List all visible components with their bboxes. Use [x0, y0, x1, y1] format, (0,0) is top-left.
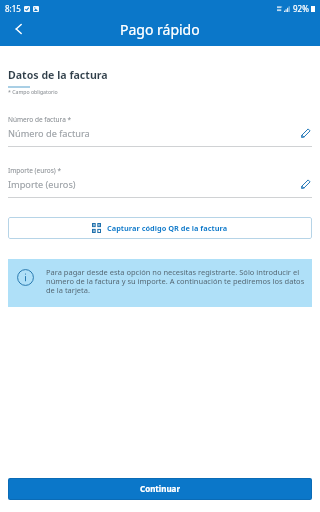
staticText: * Campo obligatorio — [8, 88, 58, 95]
staticText: Importe (euros) — [8, 178, 298, 191]
staticText: 8:15 — [5, 3, 21, 14]
staticText: 92% — [293, 3, 309, 14]
button[interactable]: Edit — [298, 126, 312, 140]
button[interactable]: Capturar código QR de la factura — [8, 217, 312, 239]
staticText: Pago rápido — [120, 20, 200, 39]
button[interactable]: Edit — [298, 177, 312, 191]
button[interactable]: Continuar — [9, 479, 311, 499]
button[interactable]: Back — [8, 18, 30, 40]
staticText: Número de factura — [8, 127, 298, 140]
staticText: Para pagar desde esta opción no necesita… — [46, 267, 307, 295]
staticText: Capturar código QR de la factura — [107, 223, 228, 233]
staticText: Continuar — [140, 483, 180, 494]
staticText: Datos de la factura — [8, 68, 108, 82]
staticText: Importe (euros) * — [8, 166, 62, 175]
staticText: Número de factura * — [8, 115, 72, 124]
